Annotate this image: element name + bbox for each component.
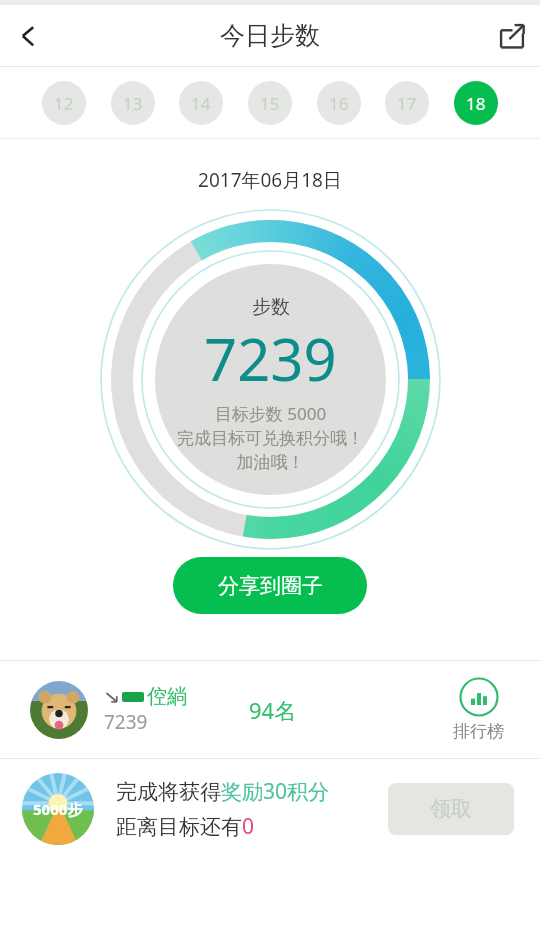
staticText: 目标步数 5000 完成目标可兑换积分哦！ 加油哦！ — [177, 402, 364, 473]
staticText: 13 — [123, 92, 143, 115]
staticText: 16 — [329, 92, 349, 115]
button[interactable]: 13 — [111, 81, 155, 125]
button[interactable]: Back — [0, 8, 56, 64]
button[interactable]: Share — [484, 8, 540, 64]
staticText: 17 — [397, 92, 417, 115]
button[interactable]: 排行榜 — [453, 677, 504, 742]
staticText: 倥緔 — [147, 684, 187, 709]
staticText: 今日步数 — [220, 20, 320, 51]
staticText: 领取 — [430, 796, 472, 822]
staticText: 14 — [191, 92, 211, 115]
staticText: 94名 — [249, 695, 297, 725]
button[interactable]: 17 — [385, 81, 429, 125]
staticText: 12 — [54, 92, 74, 115]
button[interactable]: 12 — [42, 81, 86, 125]
button[interactable]: 分享到圈子 — [173, 557, 367, 614]
staticText: 5000步 — [33, 799, 83, 819]
button[interactable]: 14 — [179, 81, 223, 125]
button[interactable]: 15 — [248, 81, 292, 125]
button[interactable]: 领取 — [388, 783, 514, 835]
staticText: 15 — [260, 92, 280, 115]
staticText: 2017年06月18日 — [0, 167, 540, 193]
staticText: 步数 — [252, 295, 290, 319]
button[interactable]: 倥緔 — [0, 661, 540, 758]
staticText: 距离目标还有0 — [116, 812, 255, 841]
button[interactable]: 16 — [317, 81, 361, 125]
staticText: 分享到圈子 — [218, 573, 323, 599]
staticText: 18 — [466, 92, 486, 115]
staticText: 完成将获得奖励30积分 — [116, 777, 330, 806]
staticText: 排行榜 — [453, 721, 504, 742]
staticText: 7239 — [204, 319, 337, 398]
button[interactable]: 18 — [454, 81, 498, 125]
staticText: 7239 — [104, 709, 148, 735]
